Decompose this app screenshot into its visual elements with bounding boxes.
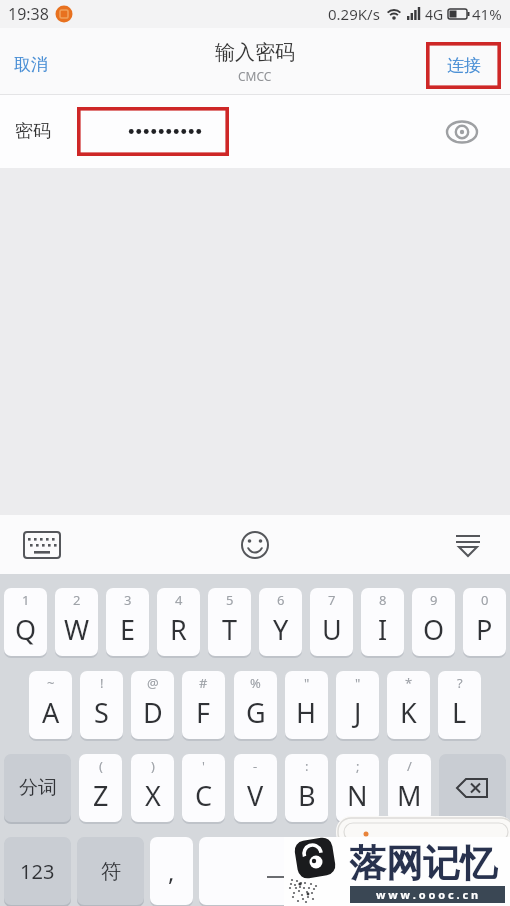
staticText: - [253, 757, 258, 775]
staticText: 7 [328, 591, 336, 609]
staticText: @ [147, 674, 159, 692]
button[interactable]: 。 [365, 837, 408, 905]
staticText: 3 [124, 591, 132, 609]
staticText: # [199, 674, 208, 692]
staticText: S [94, 694, 109, 731]
staticText: 0.29K/s [328, 4, 380, 24]
staticText: 5 [226, 591, 234, 609]
staticText: ~ [47, 674, 55, 692]
staticText: : [305, 757, 309, 775]
staticText: W [64, 611, 90, 648]
staticText: D [143, 694, 163, 731]
button[interactable]: 0 [463, 588, 506, 656]
staticText: 分词 [19, 776, 57, 800]
button[interactable]: " [285, 671, 328, 739]
staticText: 取消 [14, 54, 48, 75]
button[interactable]: " [336, 671, 379, 739]
button[interactable]: 连接 [426, 42, 501, 89]
button[interactable]: ( [79, 754, 122, 822]
staticText: T [222, 611, 238, 648]
staticText: 0 [481, 591, 489, 609]
button[interactable] [77, 107, 229, 156]
staticText: , [168, 855, 175, 888]
button[interactable]: : [285, 754, 328, 822]
staticText: / [407, 757, 412, 775]
staticText: ( [99, 757, 103, 775]
button[interactable] [439, 754, 506, 822]
staticText: P [476, 611, 493, 648]
staticText: Q [15, 611, 37, 648]
button[interactable]: ; [336, 754, 379, 822]
button[interactable]: 2 [55, 588, 98, 656]
staticText: ) [151, 757, 155, 775]
button[interactable]: 4 [157, 588, 200, 656]
button[interactable]: 7 [310, 588, 353, 656]
staticText: " [304, 674, 310, 692]
staticText: 符 [101, 859, 121, 884]
button[interactable]: ~ [29, 671, 72, 739]
staticText: * [405, 674, 413, 692]
button[interactable]: 5 [208, 588, 251, 656]
staticText: B [298, 777, 316, 814]
button[interactable]: ) [131, 754, 174, 822]
staticText: ; [356, 757, 360, 775]
button[interactable]: % [234, 671, 277, 739]
staticText: O [423, 611, 445, 648]
staticText: U [322, 611, 342, 648]
staticText: ! [100, 674, 104, 692]
staticText: 9 [430, 591, 438, 609]
button[interactable]: , [150, 837, 193, 905]
staticText: 8 [379, 591, 387, 609]
staticText: H [296, 694, 317, 731]
staticText: 4G [425, 5, 444, 24]
staticText: F [196, 694, 211, 731]
staticText: 4 [175, 591, 183, 609]
staticText: ? [457, 674, 463, 692]
staticText: % [250, 674, 261, 692]
button[interactable]: 123 [4, 837, 71, 905]
staticText: A [42, 694, 60, 731]
staticText: 41% [472, 4, 502, 24]
button[interactable] [444, 114, 480, 150]
staticText: V [247, 777, 264, 814]
button[interactable]: ' [182, 754, 225, 822]
button[interactable] [414, 837, 506, 905]
staticText: 1 [22, 591, 30, 609]
button[interactable]: @ [131, 671, 174, 739]
button[interactable] [235, 525, 275, 565]
staticText: G [246, 694, 266, 731]
staticText: N [347, 777, 368, 814]
staticText: w w w . o o o c . c n [376, 887, 479, 902]
staticText: X [145, 777, 161, 814]
staticText: R [170, 611, 187, 648]
button[interactable]: 1 [4, 588, 47, 656]
button[interactable]: / [388, 754, 431, 822]
staticText: L [452, 694, 467, 731]
staticText: 输入密码 [215, 40, 295, 65]
staticText: K [400, 694, 417, 731]
staticText: CMCC [238, 68, 272, 84]
button[interactable] [199, 837, 359, 905]
button[interactable]: # [182, 671, 225, 739]
staticText: 123 [20, 858, 55, 885]
button[interactable]: ? [438, 671, 481, 739]
staticText: J [354, 694, 362, 731]
button[interactable]: 3 [106, 588, 149, 656]
button[interactable]: 6 [259, 588, 302, 656]
button[interactable]: 分词 [4, 754, 71, 822]
button[interactable] [448, 525, 488, 565]
button[interactable]: 8 [361, 588, 404, 656]
button[interactable]: 取消 [6, 46, 56, 83]
staticText: ' [202, 757, 205, 775]
button[interactable]: * [387, 671, 430, 739]
button[interactable] [22, 525, 62, 565]
button[interactable]: ! [80, 671, 123, 739]
button[interactable]: 符 [77, 837, 144, 905]
staticText: 密码 [15, 120, 51, 143]
staticText: M [397, 777, 422, 814]
button[interactable]: - [234, 754, 277, 822]
staticText: Y [273, 611, 289, 648]
button[interactable]: 9 [412, 588, 455, 656]
staticText: 2 [73, 591, 81, 609]
staticText: 。 [377, 859, 397, 884]
